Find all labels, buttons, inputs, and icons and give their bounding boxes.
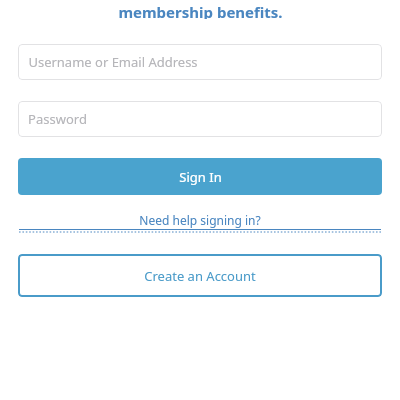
- staticText: Need help signing in?: [139, 212, 261, 228]
- staticText: Create an Account: [144, 267, 256, 285]
- button[interactable]: Username or Email Address: [18, 44, 382, 80]
- staticText: membership benefits.: [118, 2, 283, 19]
- staticText: Username or Email Address: [28, 53, 198, 71]
- button[interactable]: Need help signing in?: [18, 210, 382, 235]
- staticText: Password: [28, 110, 87, 128]
- button[interactable]: Sign In: [18, 158, 382, 195]
- button[interactable]: Create an Account: [18, 254, 382, 297]
- staticText: Sign In: [179, 168, 222, 186]
- button[interactable]: Password: [18, 101, 382, 137]
